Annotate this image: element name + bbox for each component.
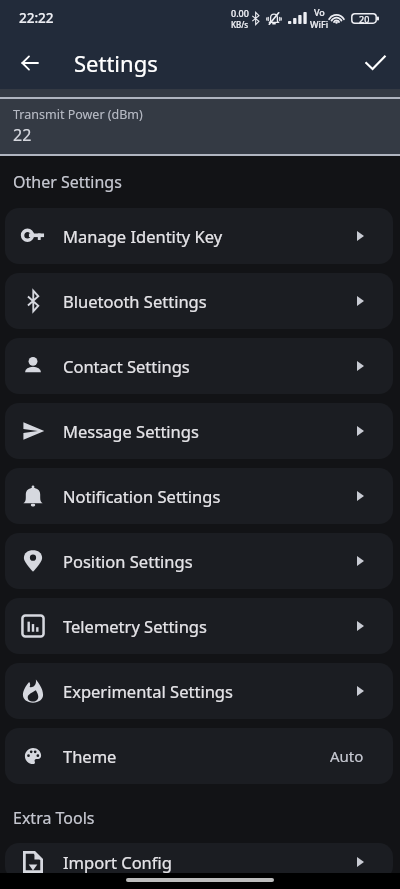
- staticText: KB/s: [231, 19, 249, 30]
- staticText: Theme: [63, 745, 117, 767]
- staticText: Experimental Settings: [63, 680, 233, 702]
- button[interactable]: Experimental Settings: [5, 663, 393, 719]
- button[interactable]: Back: [7, 40, 52, 85]
- staticText: Settings: [74, 48, 158, 78]
- staticText: Contact Settings: [63, 355, 190, 377]
- staticText: Auto: [330, 746, 364, 766]
- staticText: Manage Identity Key: [63, 225, 223, 247]
- staticText: Other Settings: [13, 171, 122, 193]
- staticText: WiFi: [310, 18, 329, 30]
- staticText: Extra Tools: [13, 807, 95, 829]
- staticText: Vo: [314, 6, 325, 18]
- button[interactable]: Telemetry Settings: [5, 598, 393, 654]
- staticText: 20: [359, 13, 370, 23]
- staticText: Bluetooth Settings: [63, 290, 207, 312]
- staticText: Message Settings: [63, 420, 199, 442]
- button[interactable]: Manage Identity Key: [5, 208, 393, 264]
- button[interactable]: Theme: [5, 728, 393, 784]
- staticText: 22: [13, 124, 32, 146]
- button[interactable]: Import Config: [5, 843, 393, 880]
- staticText: Import Config: [63, 851, 172, 873]
- staticText: Position Settings: [63, 550, 193, 572]
- staticText: Transmit Power (dBm): [13, 106, 143, 123]
- staticText: Telemetry Settings: [63, 615, 207, 637]
- button[interactable]: Bluetooth Settings: [5, 273, 393, 329]
- staticText: Notification Settings: [63, 485, 221, 507]
- button[interactable]: Contact Settings: [5, 338, 393, 394]
- button[interactable]: Message Settings: [5, 403, 393, 459]
- button[interactable]: Notification Settings: [5, 468, 393, 524]
- staticText: 22:22: [19, 9, 54, 27]
- staticText: 0.00: [231, 7, 249, 19]
- button[interactable]: Save: [353, 40, 398, 85]
- button[interactable]: Position Settings: [5, 533, 393, 589]
